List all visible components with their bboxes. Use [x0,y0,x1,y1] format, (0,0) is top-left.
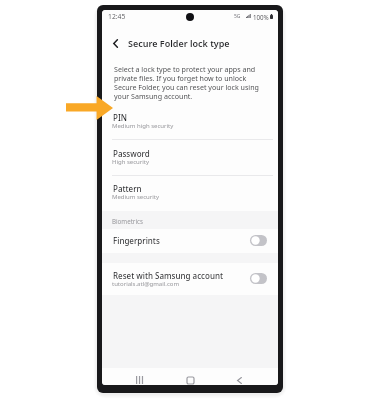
button[interactable]: Reset with Samsung account [102,264,278,294]
staticText: 12:45 [108,12,126,21]
staticText: Fingerprints [113,235,160,246]
staticText: Medium high security [112,122,174,130]
button[interactable]: Toggle off [250,273,267,284]
staticText: 5G [234,13,241,20]
staticText: PIN [113,112,127,123]
staticText: Medium security [112,193,160,201]
button[interactable]: Home [179,369,201,385]
staticText: Secure Folder lock type [128,37,230,49]
button[interactable]: Back [228,369,250,385]
staticText: High security [112,158,150,166]
button[interactable]: Back [105,33,125,53]
staticText: tutorials.atl@gmail.com [112,280,180,288]
staticText: 100% [253,13,269,21]
button[interactable]: Toggle off [250,235,267,246]
button[interactable]: Password [102,143,278,178]
staticText: Select a lock type to protect your apps … [114,64,259,101]
staticText: Biometrics [112,217,143,225]
button[interactable]: Pattern [102,178,278,213]
staticText: Password [113,148,150,159]
button[interactable]: Fingerprints [102,229,278,253]
button[interactable]: Recent apps [129,369,151,385]
staticText: Pattern [113,183,142,194]
staticText: Reset with Samsung account [113,270,223,281]
button[interactable]: PIN [102,107,278,142]
